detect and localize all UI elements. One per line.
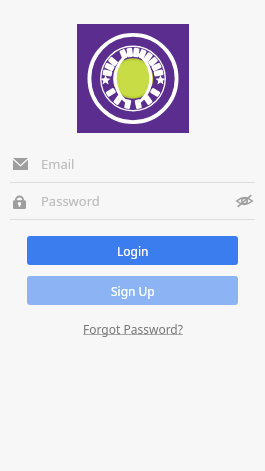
button[interactable]: Forgot Password?	[75, 317, 191, 341]
button[interactable]: Sign Up	[27, 276, 238, 305]
staticText: Login	[117, 243, 149, 259]
button[interactable]: Login	[27, 236, 238, 265]
button[interactable]: Email	[0, 146, 265, 182]
staticText: Forgot Password?	[83, 321, 183, 337]
staticText: Password	[41, 192, 100, 210]
staticText: Email	[41, 155, 75, 173]
button[interactable]: Password	[0, 183, 265, 219]
button[interactable]: Show password	[233, 190, 255, 212]
staticText: Sign Up	[111, 283, 155, 299]
